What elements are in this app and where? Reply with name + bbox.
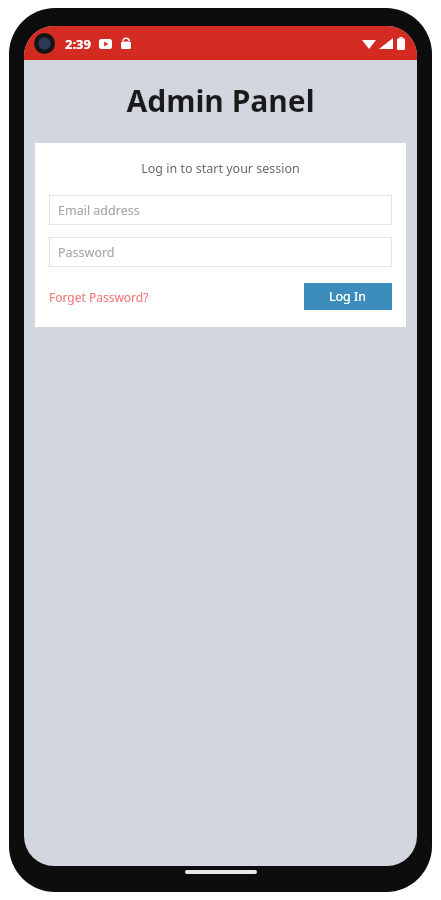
button[interactable]: Forget Password? [49, 285, 149, 309]
staticText: Password [58, 244, 115, 261]
staticText: 2:39 [65, 35, 91, 53]
staticText: Log In [329, 288, 367, 305]
staticText: Email address [58, 202, 140, 219]
button[interactable]: Password [49, 237, 392, 267]
button[interactable]: Log In [304, 283, 392, 310]
staticText: Admin Panel [24, 80, 417, 121]
button[interactable]: Email address [49, 195, 392, 225]
staticText: Forget Password? [49, 289, 149, 305]
staticText: Log in to start your session [49, 160, 392, 177]
